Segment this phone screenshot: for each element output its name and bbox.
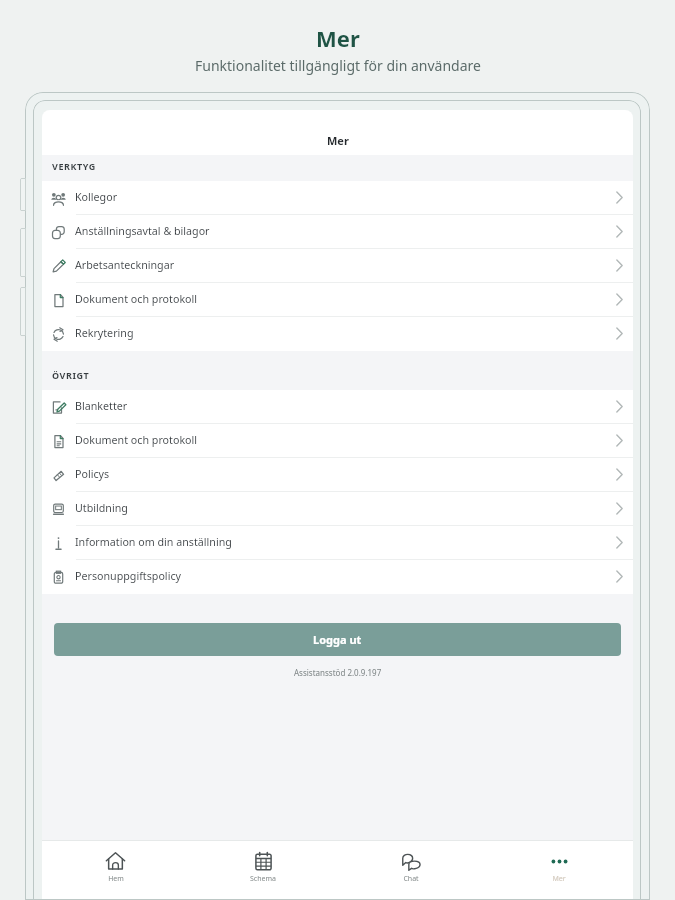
button[interactable]: Chat [337,841,485,900]
button[interactable]: Logga ut [54,623,621,656]
button[interactable]: Schema [189,841,337,900]
staticText: Utbildning [75,501,128,516]
staticText: Mer [316,23,360,53]
button[interactable]: Hem [42,841,189,900]
staticText: VERKTYG [52,160,96,172]
button[interactable]: Information om din anställning [42,526,633,560]
button[interactable]: Arbetsanteckningar [42,249,633,283]
staticText: Anställningsavtal & bilagor [75,224,210,239]
button[interactable]: Rekrytering [42,317,633,351]
staticText: ÖVRIGT [52,369,90,381]
button[interactable]: Utbildning [42,492,633,526]
staticText: Blanketter [75,399,128,414]
staticText: Assistansstöd 2.0.9.197 [294,667,382,678]
staticText: Funktionalitet tillgängligt för din anvä… [195,56,481,75]
staticText: Personuppgiftspolicy [75,569,181,584]
staticText: Arbetsanteckningar [75,258,175,273]
button[interactable]: Dokument och protokoll [42,283,633,317]
staticText: Mer [552,874,566,884]
button[interactable]: Personuppgiftspolicy [42,560,633,594]
staticText: Dokument och protokoll [75,433,198,448]
staticText: Logga ut [313,632,362,647]
button[interactable]: Anställningsavtal & bilagor [42,215,633,249]
button[interactable]: Dokument och protokoll [42,424,633,458]
staticText: Schema [250,874,276,884]
button[interactable]: Blanketter [42,390,633,424]
button[interactable]: Policys [42,458,633,492]
staticText: Chat [403,874,419,884]
button[interactable]: Kollegor [42,181,633,215]
staticText: Kollegor [75,190,118,205]
staticText: Mer [327,133,349,148]
staticText: Rekrytering [75,326,134,341]
button[interactable]: Mer [485,841,633,900]
staticText: Hem [108,874,124,884]
staticText: Dokument och protokoll [75,292,198,307]
staticText: Policys [75,467,110,482]
staticText: Information om din anställning [75,535,232,550]
